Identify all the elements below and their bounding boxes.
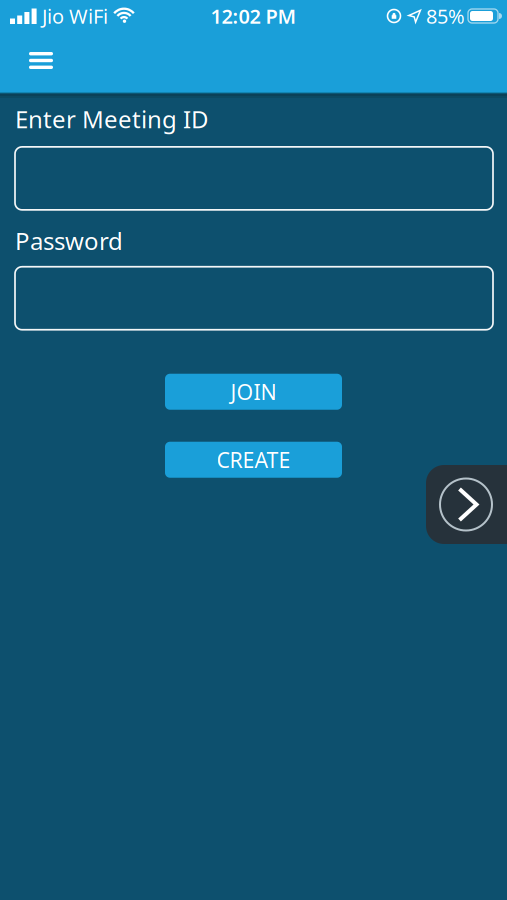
- staticText: 85%: [426, 3, 465, 29]
- staticText: Password: [15, 225, 123, 257]
- button[interactable]: Open drawer: [426, 465, 507, 544]
- button[interactable]: [15, 147, 493, 210]
- button[interactable]: CREATE: [165, 442, 342, 478]
- staticText: Enter Meeting ID: [15, 103, 209, 135]
- staticText: 12:02 PM: [210, 3, 296, 29]
- button[interactable]: Menu: [0, 32, 53, 92]
- button[interactable]: JOIN: [165, 374, 342, 410]
- staticText: JOIN: [230, 378, 276, 406]
- staticText: Jio WiFi: [42, 3, 108, 29]
- staticText: CREATE: [216, 446, 290, 474]
- button[interactable]: [15, 267, 493, 330]
